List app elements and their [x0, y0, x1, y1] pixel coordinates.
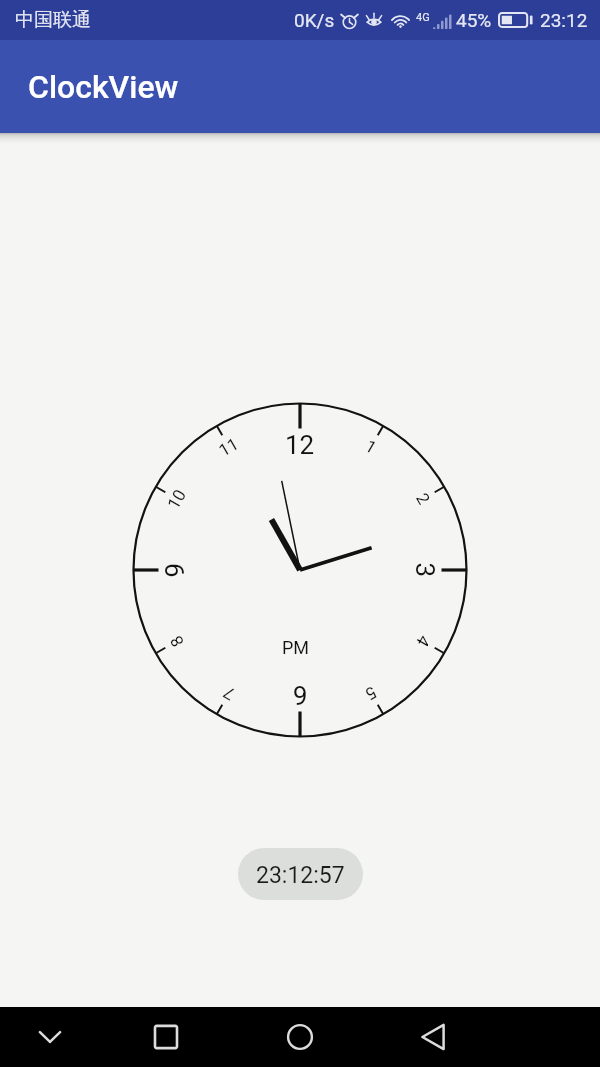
staticText: 0K/s	[294, 9, 335, 31]
staticText: 23:12:57	[256, 862, 345, 889]
staticText: ClockView	[28, 68, 179, 106]
button[interactable]: Recent apps	[134, 1007, 198, 1067]
staticText: 23:12	[540, 9, 588, 31]
staticText: 45%	[456, 9, 492, 31]
button[interactable]: Back	[401, 1007, 465, 1067]
button[interactable]: Home	[268, 1007, 332, 1067]
button[interactable]: 23:12:57	[238, 848, 363, 900]
staticText: 中国联通	[15, 8, 91, 32]
staticText: 4G	[416, 11, 430, 24]
button[interactable]: Hide keyboard	[18, 1007, 82, 1067]
